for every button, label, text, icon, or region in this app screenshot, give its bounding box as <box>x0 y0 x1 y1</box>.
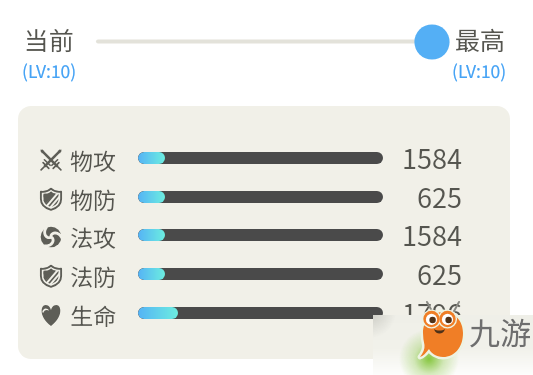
other: 物防 <box>40 188 62 210</box>
button[interactable]: 当前 <box>12 20 90 88</box>
other: 法攻 <box>40 226 62 248</box>
staticText: 九游 <box>469 309 531 354</box>
staticText: 625 <box>417 177 462 211</box>
button[interactable]: 生命 <box>18 296 510 330</box>
staticText: 最高 <box>455 21 506 57</box>
button[interactable]: 法防 <box>18 257 510 291</box>
other: 物攻 <box>40 149 62 171</box>
staticText: 生命 <box>70 298 116 331</box>
staticText: 法攻 <box>70 220 116 253</box>
staticText: (LV:10) <box>452 58 507 83</box>
staticText: 物攻 <box>70 143 116 176</box>
button[interactable]: 物防 <box>18 180 510 214</box>
other: 生命 <box>40 304 62 326</box>
staticText: (LV:10) <box>22 58 77 83</box>
staticText: 1584 <box>402 215 462 249</box>
staticText: 当前 <box>24 21 75 57</box>
staticText: 法防 <box>70 259 116 292</box>
button[interactable]: 法攻 <box>18 218 510 252</box>
button[interactable]: Level slider <box>96 22 452 62</box>
staticText: 物防 <box>70 182 116 215</box>
button[interactable]: 物攻 <box>18 141 510 175</box>
staticText: 1796 <box>402 293 462 327</box>
other: 法防 <box>40 265 62 287</box>
staticText: 1584 <box>402 138 462 172</box>
staticText: 625 <box>417 254 462 288</box>
button[interactable]: 最高 <box>444 20 522 88</box>
